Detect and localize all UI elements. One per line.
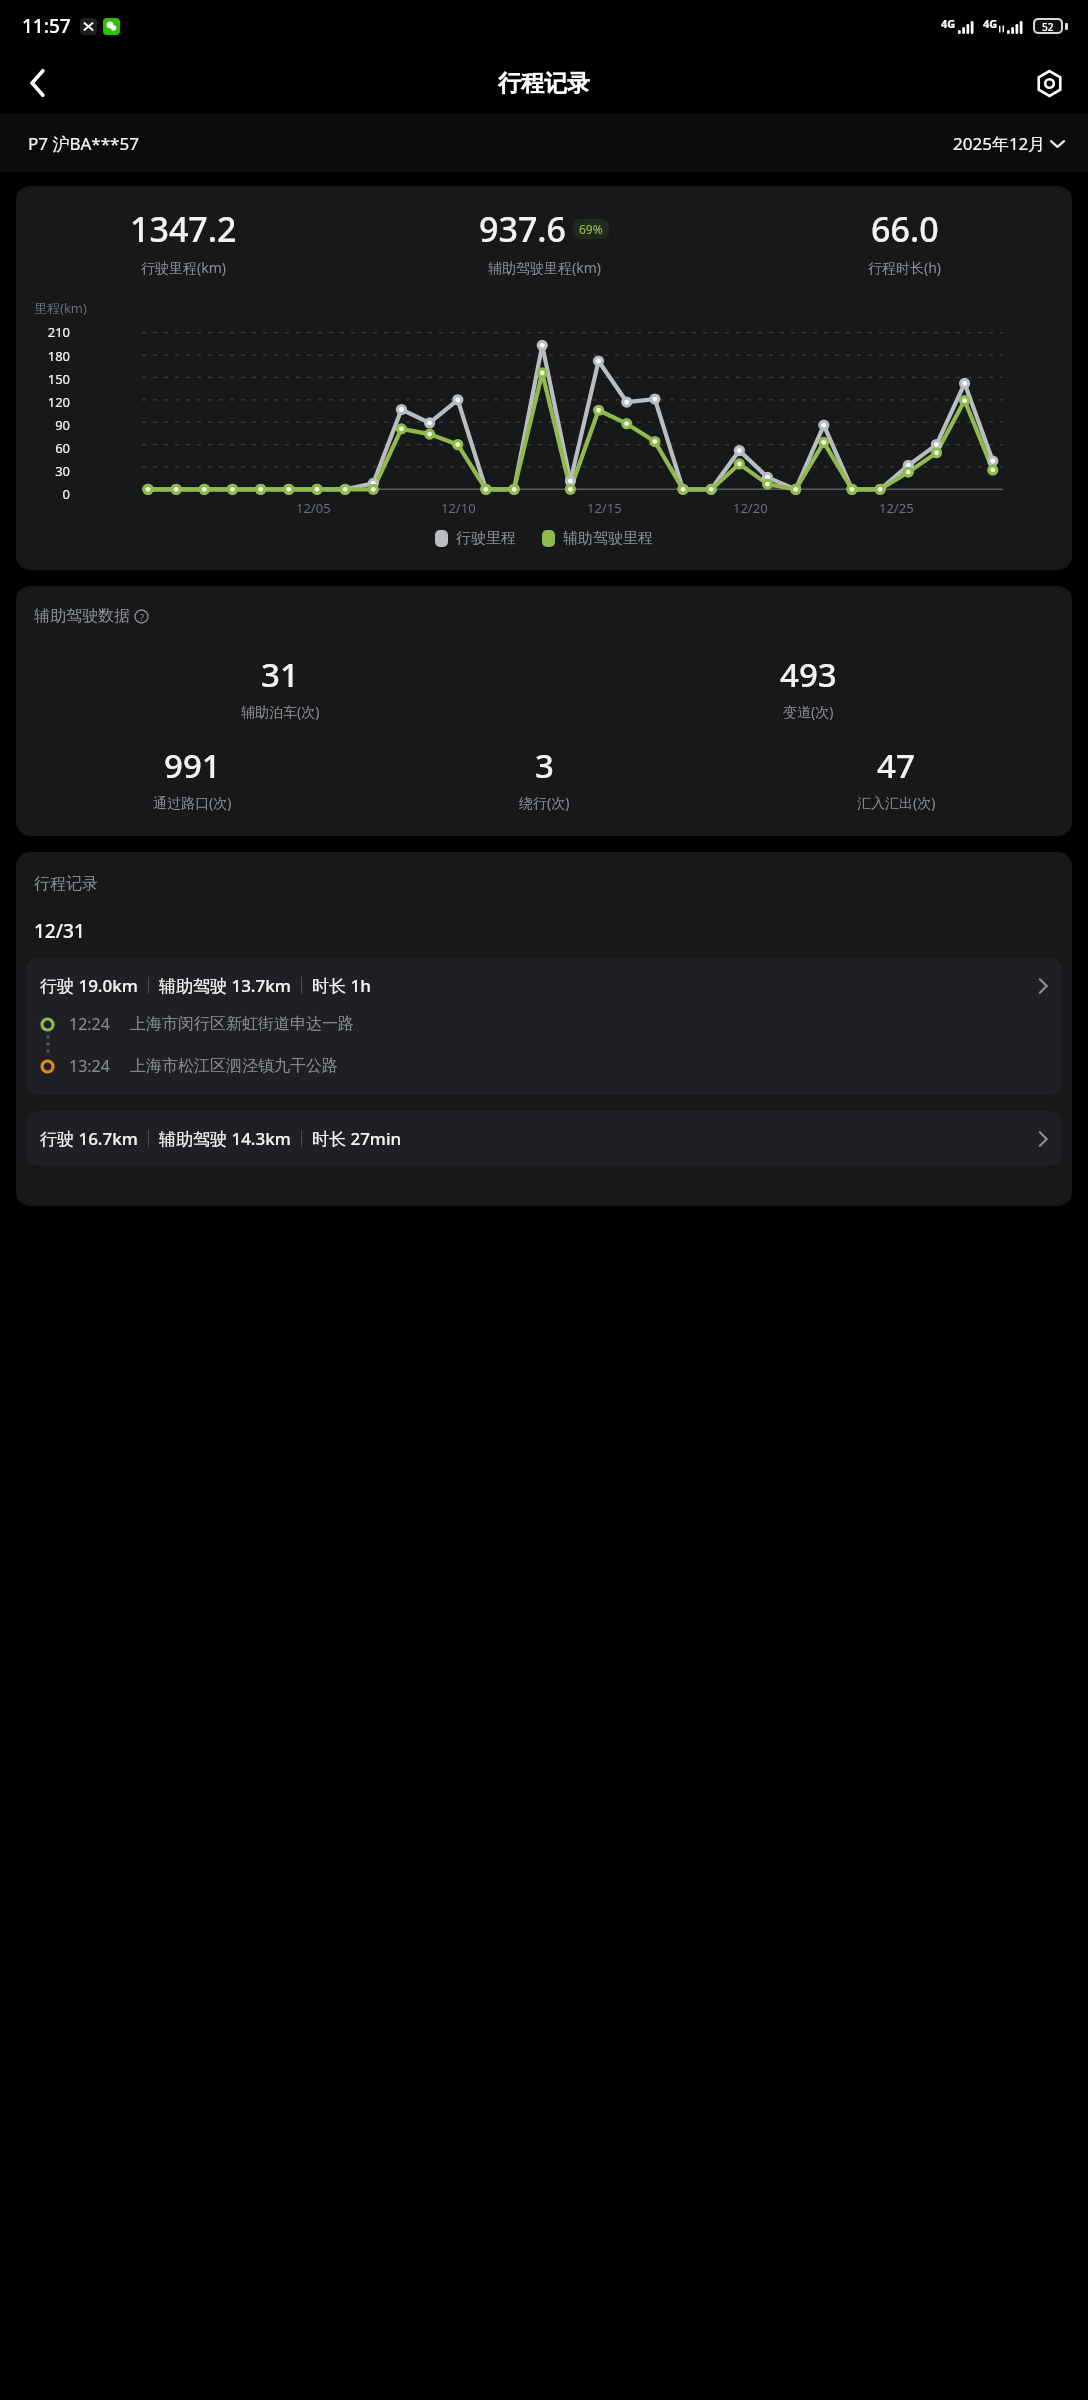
staticText: 991: [164, 743, 221, 788]
staticText: 1347.2: [130, 206, 237, 252]
staticText: 上海市闵行区新虹街道申达一路: [130, 1014, 354, 1034]
button[interactable]: 行驶 19.0km: [26, 958, 1062, 1095]
staticText: 12:24: [69, 1013, 110, 1035]
staticText: P7 沪BA***57: [28, 132, 139, 155]
staticText: 12/05: [296, 499, 331, 517]
staticText: 90: [26, 416, 70, 430]
staticText: 180: [26, 347, 70, 361]
staticText: 变道(次): [783, 702, 834, 721]
staticText: 120: [26, 393, 70, 407]
staticText: 3: [535, 743, 554, 788]
staticText: ?: [140, 611, 144, 623]
button[interactable]: 返回: [12, 57, 64, 109]
staticText: 辅助驾驶数据: [34, 606, 130, 626]
staticText: 31: [261, 652, 299, 697]
button[interactable]: 设置: [1024, 58, 1074, 108]
staticText: 汇入汇出(次): [857, 793, 936, 812]
staticText: 937.6: [479, 206, 567, 252]
staticText: 12/20: [733, 499, 768, 517]
staticText: 4G: [983, 16, 998, 31]
staticText: 12/25: [879, 499, 914, 517]
staticText: 11:57: [22, 13, 71, 39]
staticText: 里程(km): [34, 299, 87, 317]
staticText: 辅助泊车(次): [241, 702, 320, 721]
staticText: 绕行(次): [519, 793, 570, 812]
staticText: 通过路口(次): [153, 793, 232, 812]
staticText: 行驶 19.0km: [40, 974, 138, 997]
button[interactable]: 2025年12月: [953, 132, 1064, 155]
staticText: 2025年12月: [953, 132, 1046, 155]
staticText: 行驶里程(km): [141, 258, 226, 277]
staticText: 辅助驾驶里程(km): [488, 258, 601, 277]
button[interactable]: 说明: [133, 608, 150, 625]
staticText: 66.0: [871, 206, 939, 252]
staticText: 行程时长(h): [868, 258, 942, 277]
staticText: 12/15: [587, 499, 622, 517]
staticText: 时长 1h: [312, 974, 371, 997]
staticText: 13:24: [69, 1055, 110, 1077]
staticText: 4G: [941, 16, 956, 31]
staticText: 辅助驾驶里程: [563, 529, 653, 548]
staticText: 行程记录: [498, 69, 590, 98]
staticText: 0: [26, 485, 70, 499]
button[interactable]: 行驶 16.7km: [26, 1111, 1062, 1166]
staticText: 69%: [579, 221, 603, 237]
staticText: 30: [26, 462, 70, 476]
staticText: 辅助驾驶 14.3km: [159, 1127, 291, 1150]
staticText: 时长 27min: [312, 1127, 402, 1150]
staticText: 行驶里程: [456, 529, 516, 548]
staticText: 上海市松江区泗泾镇九干公路: [130, 1056, 338, 1076]
staticText: 行程记录: [34, 874, 98, 894]
staticText: 52: [1042, 20, 1054, 32]
staticText: 行驶 16.7km: [40, 1127, 138, 1150]
staticText: 60: [26, 439, 70, 453]
staticText: 493: [780, 652, 837, 697]
staticText: 12/31: [34, 918, 85, 944]
staticText: 47: [877, 743, 915, 788]
staticText: 150: [26, 370, 70, 384]
staticText: 辅助驾驶 13.7km: [159, 974, 291, 997]
staticText: 12/10: [441, 499, 476, 517]
staticText: 210: [26, 323, 70, 337]
